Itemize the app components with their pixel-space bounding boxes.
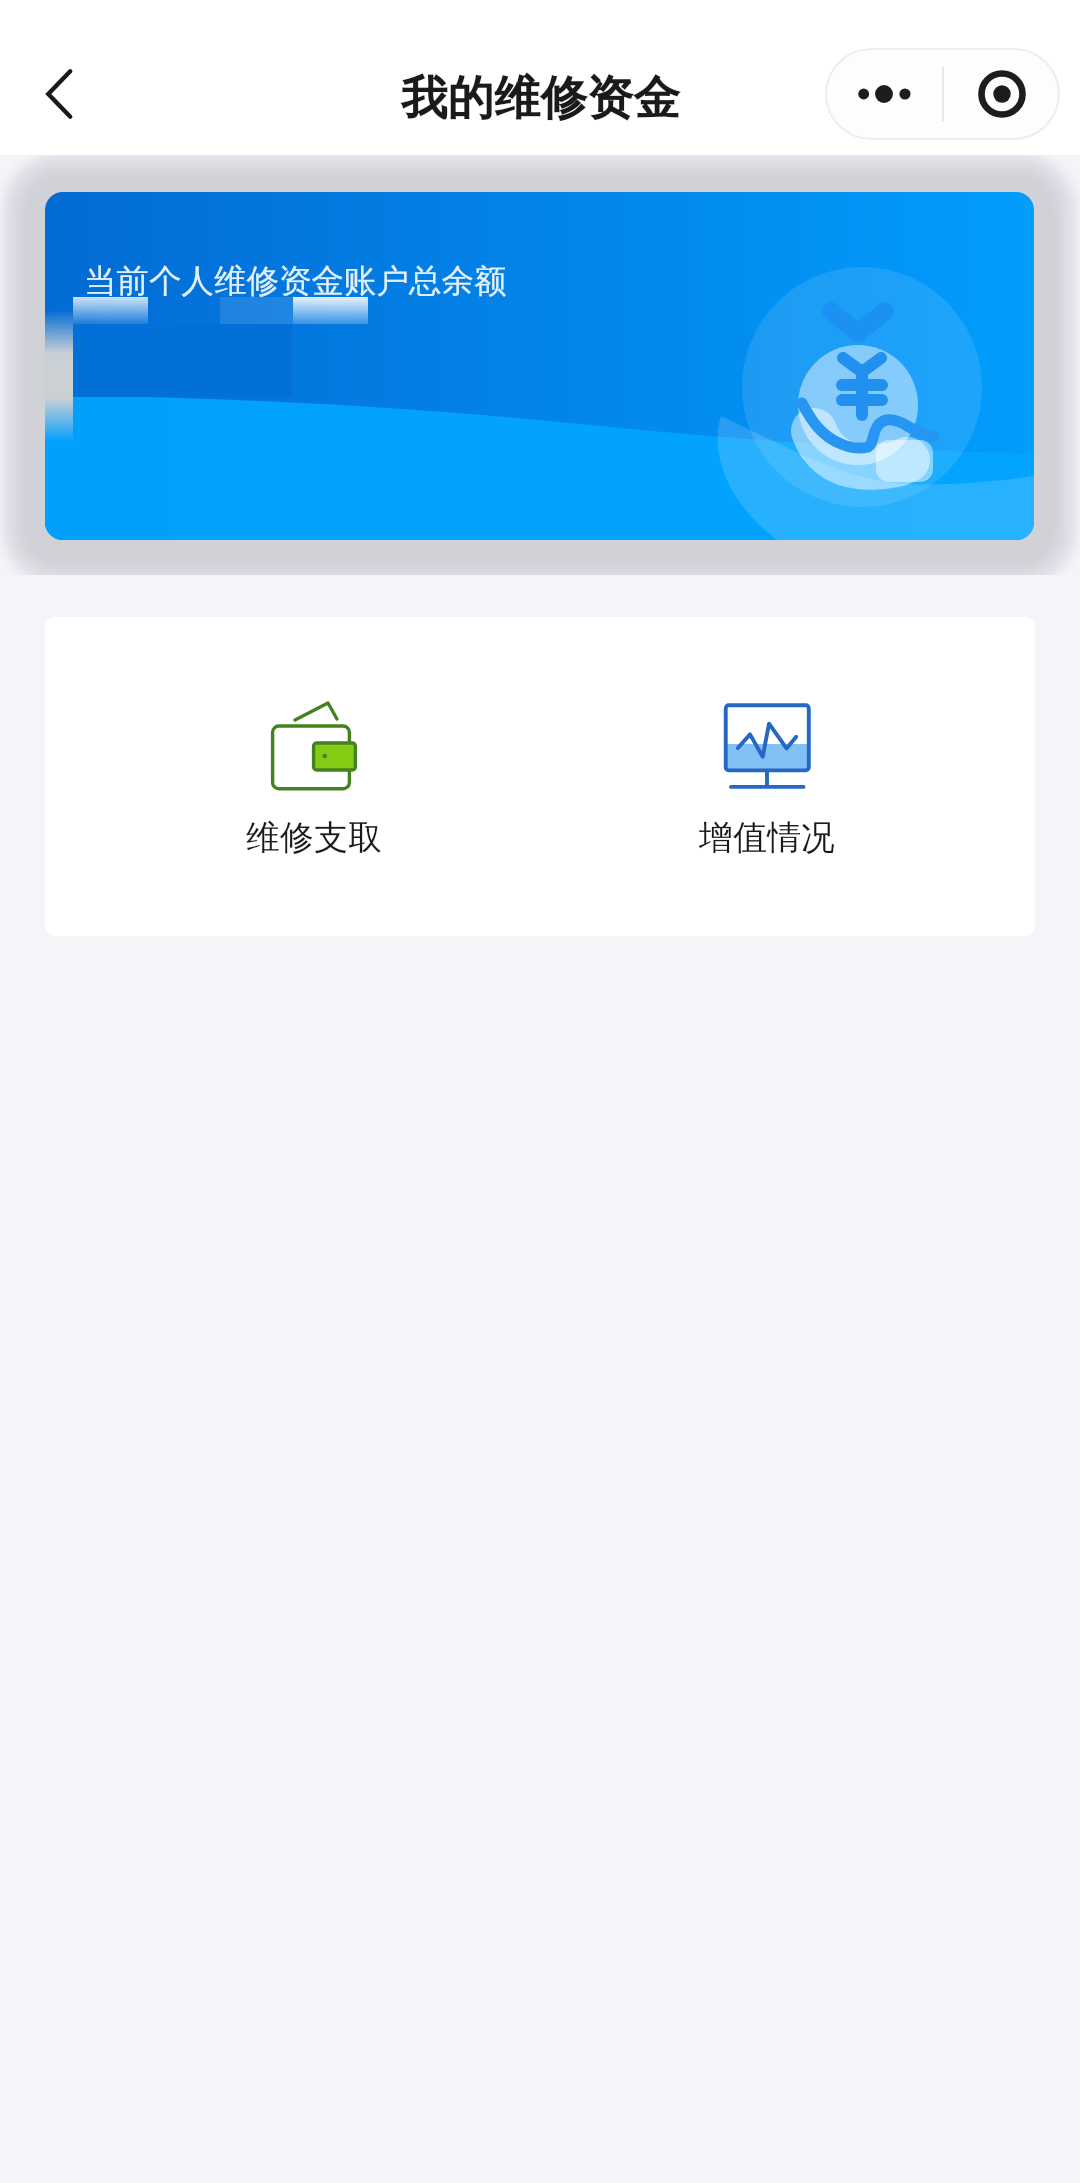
staticText: 我的维修资金 [401,69,680,128]
button[interactable]: More options [825,48,942,140]
button[interactable]: 维修支取 [130,617,497,936]
button[interactable]: 增值情况 [583,617,950,936]
button[interactable]: Back [14,46,110,142]
button[interactable]: Close [944,48,1060,140]
staticText: 增值情况 [699,816,835,859]
staticText: 当前个人维修资金账户总余额 [84,261,507,302]
staticText: 维修支取 [246,816,382,859]
